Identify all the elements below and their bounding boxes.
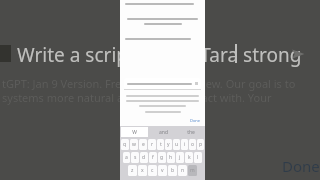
staticText: c	[151, 167, 154, 174]
button[interactable]: p	[197, 139, 204, 150]
staticText: r	[151, 141, 154, 148]
staticText: m	[190, 167, 195, 174]
button[interactable]: r	[148, 139, 156, 150]
button[interactable]: j	[176, 152, 184, 163]
staticText: Done	[190, 118, 201, 123]
button[interactable]: t	[157, 139, 164, 150]
button[interactable]: the	[177, 126, 205, 138]
button[interactable]: W	[121, 127, 148, 137]
button[interactable]	[127, 78, 198, 89]
button[interactable]: c	[148, 165, 157, 176]
button[interactable]: v	[158, 165, 167, 176]
staticText: e	[142, 141, 145, 148]
staticText: w	[132, 141, 136, 148]
staticText: j	[179, 154, 181, 161]
staticText: q	[123, 141, 127, 148]
staticText: Write a script where Tara strong meets t	[17, 42, 317, 68]
button[interactable]: i	[181, 139, 188, 150]
staticText: f	[152, 154, 154, 161]
button[interactable]: Done	[190, 118, 201, 123]
button[interactable]: w	[130, 139, 138, 150]
button[interactable]: m	[188, 165, 197, 176]
button[interactable]: Send	[288, 44, 308, 64]
button[interactable]: and	[149, 126, 177, 138]
button[interactable]: y	[165, 139, 172, 150]
staticText: the	[187, 129, 195, 136]
button[interactable]: Done	[282, 156, 320, 176]
staticText: l	[197, 154, 199, 161]
staticText: Done	[282, 156, 320, 176]
staticText: d	[142, 154, 146, 161]
button[interactable]: s	[131, 152, 139, 163]
staticText: k	[188, 154, 191, 161]
button[interactable]: a	[123, 152, 130, 163]
staticText: n	[181, 167, 185, 174]
staticText: u	[175, 141, 179, 148]
button[interactable]: l	[194, 152, 202, 163]
staticText: a	[125, 154, 128, 161]
staticText: W	[132, 129, 137, 136]
staticText: i	[184, 141, 186, 148]
button[interactable]: k	[185, 152, 193, 163]
staticText: t	[160, 141, 162, 148]
button[interactable]: f	[149, 152, 157, 163]
button[interactable]: e	[139, 139, 147, 150]
staticText: tGPT: Jan 9 Version. Free Research Previ…	[2, 76, 318, 91]
staticText: y	[167, 141, 170, 148]
staticText: b	[171, 167, 175, 174]
staticText: x	[141, 167, 144, 174]
staticText: g	[160, 154, 164, 161]
staticText: p	[199, 141, 203, 148]
button[interactable]: z	[128, 165, 137, 176]
staticText: v	[161, 167, 164, 174]
button[interactable]: h	[167, 152, 175, 163]
button[interactable]: x	[138, 165, 147, 176]
staticText: h	[169, 154, 173, 161]
button[interactable]: u	[173, 139, 180, 150]
staticText: and	[159, 129, 168, 136]
button[interactable]: q	[121, 139, 129, 150]
staticText: z	[131, 167, 134, 174]
button[interactable]: b	[168, 165, 177, 176]
button[interactable]: d	[140, 152, 148, 163]
button[interactable]: o	[189, 139, 196, 150]
staticText: systems more natural and safe to interac…	[2, 90, 318, 105]
button[interactable]: g	[158, 152, 166, 163]
staticText: o	[191, 141, 195, 148]
staticText: s	[134, 154, 137, 161]
button[interactable]: n	[178, 165, 187, 176]
